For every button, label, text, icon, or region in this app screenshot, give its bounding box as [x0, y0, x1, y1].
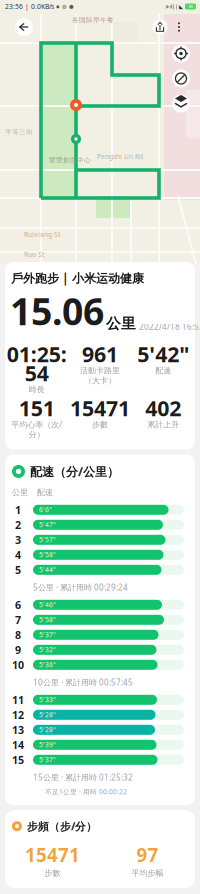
staticText: 配速: [37, 487, 53, 497]
staticText: 5'58": [39, 615, 56, 624]
staticText: 5'57": [39, 535, 56, 544]
staticText: 10: [12, 658, 24, 672]
button[interactable]: 更多: [170, 18, 188, 36]
staticText: 151: [19, 394, 55, 422]
staticText: 54: [25, 359, 49, 387]
staticText: 15公里 · 累計用時 01:25:32: [33, 772, 133, 783]
staticText: 平均步幅: [131, 868, 163, 878]
staticText: 各国际早午餐: [72, 16, 114, 24]
staticText: 13: [12, 723, 24, 737]
staticText: 不足1公里 · 用時 00:00:22: [45, 787, 127, 796]
staticText: 5公里 · 累計用時 00:29:24: [33, 582, 128, 593]
staticText: 分）: [29, 430, 45, 439]
staticText: 步頻（步/分）: [27, 819, 97, 833]
staticText: 2022/4/18 16:53: [139, 321, 200, 332]
staticText: ▪ ◍ ●: [54, 3, 74, 10]
button[interactable]: 返回: [13, 16, 35, 38]
staticText: 14: [12, 738, 24, 752]
staticText: 公里: [106, 314, 136, 332]
staticText: 戶外跑步 | 小米运动健康: [11, 270, 144, 286]
staticText: 5: [15, 563, 21, 577]
staticText: 402: [145, 394, 181, 422]
staticText: 5'37": [39, 755, 56, 764]
staticText: 23:56 | 0.0KB/s: [5, 2, 54, 11]
staticText: 97: [136, 842, 158, 867]
staticText: 5'28": [39, 710, 56, 719]
staticText: 3: [15, 533, 21, 547]
staticText: 公里: [12, 487, 28, 497]
staticText: Ruo St: [24, 250, 44, 259]
staticText: 2: [15, 518, 21, 532]
staticText: 5'42": [137, 340, 189, 368]
staticText: 5'37": [39, 630, 56, 639]
staticText: 豐豐創意中心: [49, 156, 91, 164]
staticText: 8: [15, 628, 21, 642]
staticText: 5'58": [39, 550, 56, 559]
staticText: 步數: [44, 868, 60, 878]
staticText: 6'6": [39, 505, 52, 514]
staticText: 1: [15, 503, 21, 517]
staticText: 配速（分/公里）: [30, 463, 119, 479]
staticText: 5'36": [39, 660, 56, 669]
button[interactable]: 分享: [150, 17, 170, 37]
staticText: 7: [15, 613, 21, 627]
staticText: 4: [15, 548, 21, 562]
staticText: 5'46": [39, 600, 56, 609]
staticText: 15471: [70, 394, 130, 422]
staticText: 步數: [92, 420, 108, 429]
staticText: 5'44": [39, 565, 56, 574]
staticText: 配速: [155, 366, 171, 375]
staticText: 10公里 · 累計用時 00:57:45: [33, 677, 133, 688]
button[interactable]: 隱藏軌跡: [172, 69, 190, 87]
button[interactable]: 定位: [172, 44, 190, 62]
staticText: Pengshi Lin Rd: [97, 152, 143, 161]
staticText: 平均心率（次/: [11, 419, 62, 430]
staticText: 01:25:: [7, 340, 67, 368]
staticText: 5'33": [39, 695, 56, 704]
staticText: 9: [15, 643, 21, 657]
staticText: 15: [12, 753, 24, 767]
staticText: 累計上升: [147, 420, 179, 429]
staticText: 15471: [25, 842, 80, 867]
staticText: 5'28": [39, 725, 56, 734]
staticText: 88: [188, 4, 192, 9]
staticText: 11: [12, 693, 24, 707]
staticText: 12: [12, 708, 24, 722]
staticText: 活動卡路里: [80, 366, 120, 375]
staticText: Ruixiang St: [24, 230, 60, 239]
staticText: 時長: [29, 385, 45, 394]
staticText: 5'47": [39, 520, 56, 529]
staticText: 平等三街: [5, 128, 33, 136]
staticText: （大卡）: [84, 376, 116, 385]
staticText: 15.06: [10, 286, 104, 335]
button[interactable]: 圖層: [172, 94, 190, 112]
staticText: 6: [15, 598, 21, 612]
staticText: ≯ ıl|| ◣: [165, 3, 183, 10]
staticText: 5'32": [39, 645, 56, 654]
staticText: 961: [82, 340, 118, 368]
staticText: 5'39": [39, 740, 56, 749]
